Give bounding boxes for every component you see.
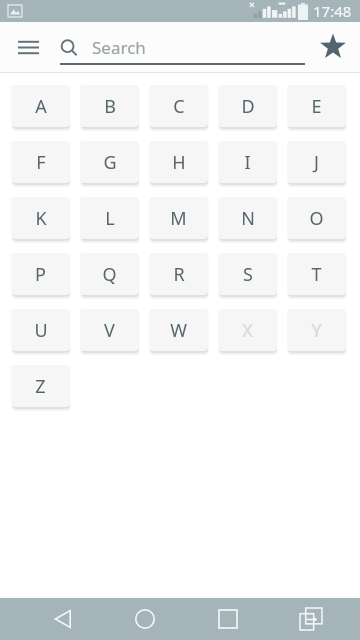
staticText: Q <box>102 262 117 287</box>
button[interactable]: N <box>218 197 277 239</box>
button[interactable]: Z <box>11 365 70 407</box>
staticText: Y <box>311 318 322 343</box>
button[interactable]: B <box>80 85 139 127</box>
button[interactable]: Recents <box>205 598 251 640</box>
staticText: V <box>104 318 115 343</box>
staticText: 17:48 <box>313 1 352 21</box>
button[interactable]: O <box>287 197 346 239</box>
staticText: T <box>311 262 322 287</box>
button[interactable]: Menu <box>8 27 48 67</box>
staticText: K <box>35 206 47 231</box>
staticText: I <box>244 150 251 175</box>
staticText: P <box>35 262 46 287</box>
button[interactable]: Back <box>40 598 86 640</box>
staticText: R <box>173 262 185 287</box>
button[interactable]: J <box>287 141 346 183</box>
button[interactable]: I <box>218 141 277 183</box>
staticText: S <box>243 262 253 287</box>
staticText: A <box>35 94 47 119</box>
staticText: X <box>242 318 253 343</box>
button[interactable]: H <box>149 141 208 183</box>
staticText: H <box>172 150 186 175</box>
staticText: Search <box>92 36 146 59</box>
button[interactable]: S <box>218 253 277 295</box>
button[interactable]: T <box>287 253 346 295</box>
button[interactable]: A <box>11 85 70 127</box>
button[interactable]: Favorites <box>312 26 354 68</box>
staticText: B <box>104 94 116 119</box>
button[interactable]: X <box>218 309 277 351</box>
button[interactable]: Q <box>80 253 139 295</box>
button[interactable]: P <box>11 253 70 295</box>
staticText: C <box>173 94 185 119</box>
staticText: W <box>170 318 187 343</box>
staticText: E <box>311 94 322 119</box>
staticText: O <box>309 206 324 231</box>
button[interactable]: L <box>80 197 139 239</box>
staticText: N <box>241 206 255 231</box>
staticText: L <box>105 206 115 231</box>
button[interactable]: Home <box>122 598 168 640</box>
staticText: D <box>241 94 255 119</box>
button[interactable]: C <box>149 85 208 127</box>
button[interactable]: D <box>218 85 277 127</box>
button[interactable]: R <box>149 253 208 295</box>
button[interactable]: Switch app <box>288 598 334 640</box>
button[interactable]: K <box>11 197 70 239</box>
staticText: F <box>36 150 46 175</box>
staticText: Z <box>35 374 46 399</box>
staticText: G <box>103 150 117 175</box>
staticText: M <box>170 206 187 231</box>
button[interactable]: E <box>287 85 346 127</box>
button[interactable]: F <box>11 141 70 183</box>
button[interactable]: M <box>149 197 208 239</box>
staticText: J <box>314 150 319 175</box>
button[interactable]: V <box>80 309 139 351</box>
staticText: U <box>34 318 48 343</box>
button[interactable]: Y <box>287 309 346 351</box>
button[interactable]: Search <box>56 26 308 68</box>
button[interactable]: G <box>80 141 139 183</box>
button[interactable]: W <box>149 309 208 351</box>
button[interactable]: U <box>11 309 70 351</box>
